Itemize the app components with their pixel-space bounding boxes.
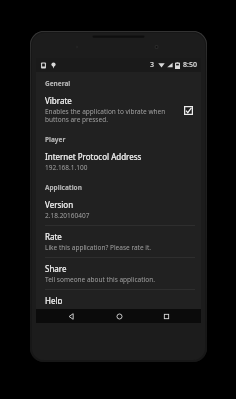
button[interactable]: Help	[36, 290, 201, 309]
staticText: Enables the application to vibrate when …	[45, 107, 176, 124]
staticText: Player	[45, 135, 66, 144]
button[interactable]: Rate	[36, 226, 201, 257]
button[interactable]: Home	[107, 309, 131, 323]
staticText: General	[45, 79, 71, 88]
staticText: Vibrate	[45, 95, 72, 106]
staticText: 192.168.1.100	[45, 163, 88, 172]
button[interactable]: Share	[36, 258, 201, 289]
staticText: Share	[45, 263, 67, 274]
button[interactable]: Vibrate enabled	[182, 104, 194, 116]
staticText: 3	[150, 60, 155, 70]
button[interactable]: Vibrate	[36, 90, 201, 129]
staticText: Internet Protocol Address	[45, 151, 142, 162]
staticText: 2.18.20160407	[45, 211, 90, 220]
staticText: Rate	[45, 231, 62, 242]
button[interactable]: Back	[59, 309, 83, 323]
staticText: Like this application? Please rate it.	[45, 243, 152, 252]
staticText: Tell someone about this application.	[45, 275, 155, 284]
staticText: 8:50	[183, 60, 197, 70]
staticText: Version	[45, 199, 74, 210]
staticText: Help	[45, 295, 63, 304]
button[interactable]: Internet Protocol Address	[36, 146, 201, 177]
button[interactable]: Version	[36, 194, 201, 225]
staticText: Application	[45, 183, 82, 192]
button[interactable]: Recent apps	[154, 309, 178, 323]
